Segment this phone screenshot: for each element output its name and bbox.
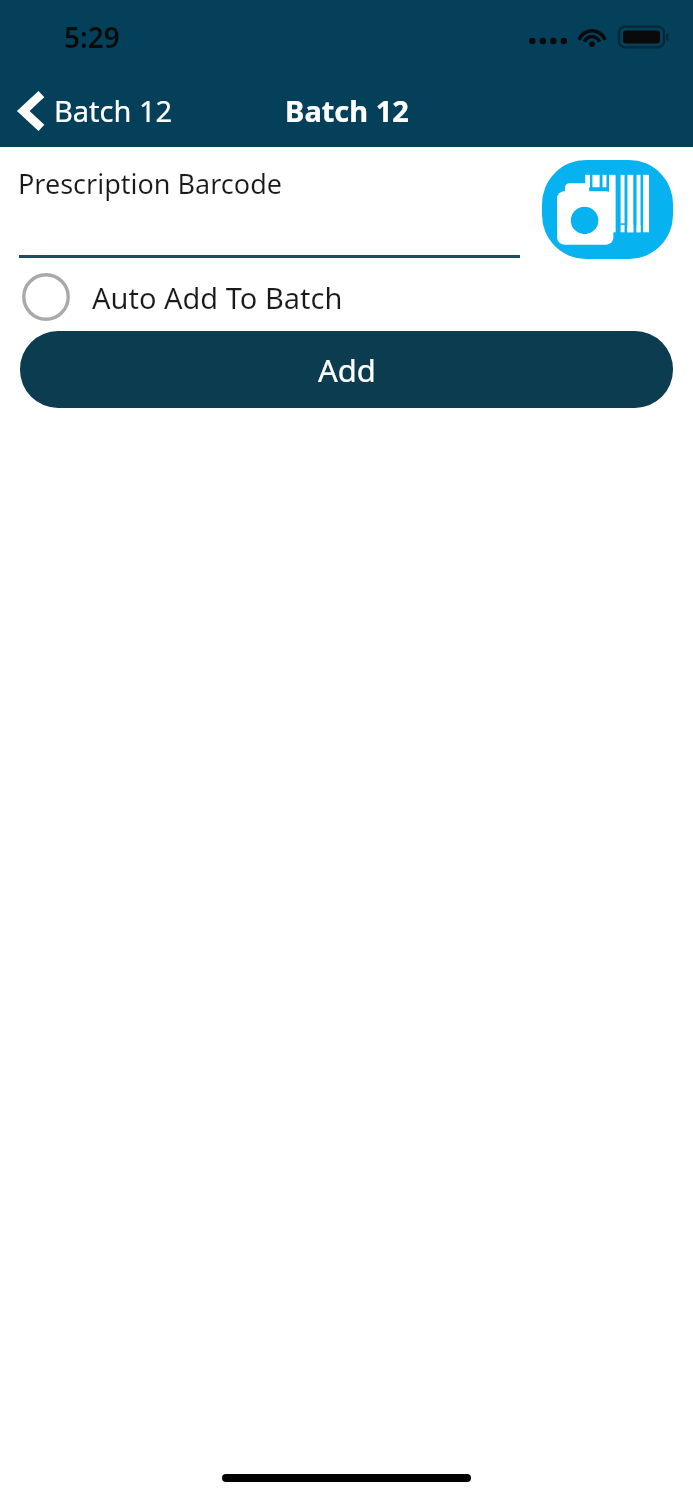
staticText: 5:29 <box>64 18 120 56</box>
button[interactable]: Auto Add To Batch <box>0 265 693 329</box>
staticText: Prescription Barcode <box>18 165 282 202</box>
staticText: Auto Add To Batch <box>92 278 343 317</box>
button[interactable]: Scan barcode <box>542 160 673 259</box>
staticText: Batch 12 <box>54 91 173 130</box>
staticText: Add <box>318 349 376 391</box>
button[interactable]: Add <box>20 331 673 408</box>
button[interactable]: Batch 12 <box>0 83 187 138</box>
staticText: Batch 12 <box>285 91 409 130</box>
